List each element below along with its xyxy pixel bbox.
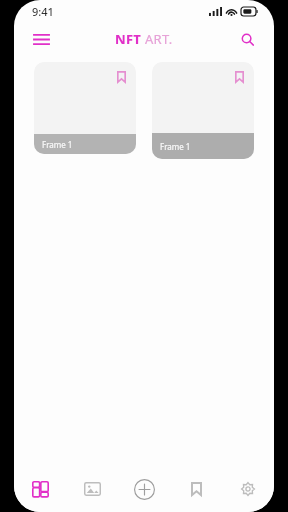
button[interactable]: Bookmark: [34, 62, 136, 154]
button[interactable]: Menu: [26, 24, 56, 54]
staticText: NFT ART.: [115, 30, 173, 48]
staticText: 9:41: [32, 4, 54, 19]
button[interactable]: Bookmark: [113, 69, 129, 85]
staticText: Frame 1: [160, 141, 191, 152]
button[interactable]: Settings: [222, 466, 274, 512]
button[interactable]: Bookmark: [231, 69, 247, 85]
button[interactable]: Gallery: [66, 466, 118, 512]
button[interactable]: Add: [118, 466, 170, 512]
button[interactable]: Saved: [170, 466, 222, 512]
button[interactable]: Bookmark: [152, 62, 254, 159]
staticText: Frame 1: [42, 139, 73, 150]
button[interactable]: Dashboard: [14, 466, 66, 512]
button[interactable]: Search: [232, 24, 262, 54]
